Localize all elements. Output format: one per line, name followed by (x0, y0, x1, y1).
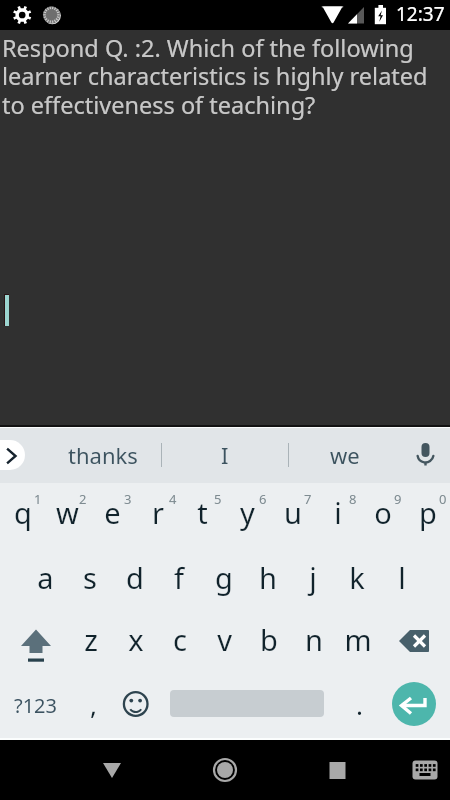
staticText: s (83, 558, 97, 597)
button[interactable]: 9 (360, 483, 405, 547)
button[interactable]: f (156, 547, 201, 610)
button[interactable]: Switch keyboard (395, 740, 450, 800)
staticText: r (152, 493, 164, 532)
button[interactable]: Backspace (383, 610, 450, 670)
staticText: a (37, 558, 54, 597)
staticText: j (309, 558, 317, 597)
staticText: 2 (79, 490, 87, 508)
staticText: p (419, 493, 437, 532)
button[interactable]: Shift (0, 610, 67, 670)
staticText: ?123 (14, 692, 57, 719)
staticText: 0 (439, 490, 447, 508)
staticText: k (349, 558, 365, 597)
button[interactable]: z (68, 610, 113, 670)
staticText: , (90, 687, 97, 722)
staticText: w (56, 493, 79, 532)
staticText: l (398, 558, 406, 597)
button[interactable]: 2 (45, 483, 90, 547)
staticText: y (240, 493, 255, 532)
button[interactable]: a (23, 547, 68, 610)
staticText: n (305, 620, 323, 659)
staticText: q (14, 493, 32, 532)
button[interactable]: 0 (405, 483, 450, 547)
staticText: z (84, 620, 98, 659)
button[interactable]: j (290, 547, 335, 610)
button[interactable]: Back (82, 740, 142, 800)
staticText: m (344, 620, 372, 659)
button[interactable]: n (291, 610, 336, 670)
staticText: 7 (304, 490, 312, 508)
button[interactable]: Emoji (116, 670, 161, 740)
staticText: g (215, 558, 233, 597)
staticText: x (128, 620, 144, 659)
button[interactable]: 8 (315, 483, 360, 547)
button[interactable]: we (289, 427, 401, 483)
staticText: f (174, 558, 184, 597)
button[interactable]: b (246, 610, 291, 670)
staticText: o (374, 493, 392, 532)
staticText: c (173, 620, 187, 659)
button[interactable]: m (335, 610, 380, 670)
button[interactable]: 6 (225, 483, 270, 547)
button[interactable]: c (157, 610, 202, 670)
staticText: 4 (169, 490, 177, 508)
button[interactable]: 5 (180, 483, 225, 547)
staticText: 8 (349, 490, 357, 508)
staticText: v (217, 620, 232, 659)
button[interactable]: I (162, 427, 288, 483)
staticText: d (126, 558, 144, 597)
button[interactable]: More suggestions (0, 440, 25, 470)
staticText: I (221, 440, 229, 470)
staticText: 9 (394, 490, 402, 508)
staticText: e (104, 493, 121, 532)
staticText: b (260, 620, 278, 659)
button[interactable]: l (379, 547, 424, 610)
button[interactable]: Recents (307, 740, 367, 800)
staticText: 5 (214, 490, 222, 508)
button[interactable]: 3 (90, 483, 135, 547)
button[interactable]: v (202, 610, 247, 670)
staticText: thanks (68, 440, 138, 470)
button[interactable]: Enter (392, 682, 436, 726)
button[interactable]: Symbols (0, 670, 71, 740)
staticText: 12:37 (396, 1, 445, 27)
button[interactable]: 1 (0, 483, 45, 547)
staticText: Respond Q. :2. Which of the following le… (2, 32, 428, 121)
staticText: 3 (124, 490, 132, 508)
staticText: we (330, 440, 360, 470)
button[interactable]: s (67, 547, 112, 610)
button[interactable]: Voice input (401, 427, 450, 483)
button[interactable]: g (201, 547, 246, 610)
button[interactable]: x (113, 610, 158, 670)
staticText: h (259, 558, 277, 597)
button[interactable]: 4 (135, 483, 180, 547)
staticText: u (284, 493, 302, 532)
staticText: . (356, 687, 363, 722)
button[interactable]: d (112, 547, 157, 610)
button[interactable]: Comma (71, 670, 116, 740)
button[interactable]: Period (337, 670, 382, 740)
staticText: 1 (34, 490, 42, 508)
button[interactable]: h (245, 547, 290, 610)
button[interactable]: thanks (44, 427, 161, 483)
staticText: i (334, 493, 342, 532)
button[interactable]: k (334, 547, 379, 610)
staticText: t (197, 493, 208, 532)
button[interactable]: 7 (270, 483, 315, 547)
button[interactable]: Home (195, 740, 255, 800)
staticText: 6 (259, 490, 267, 508)
